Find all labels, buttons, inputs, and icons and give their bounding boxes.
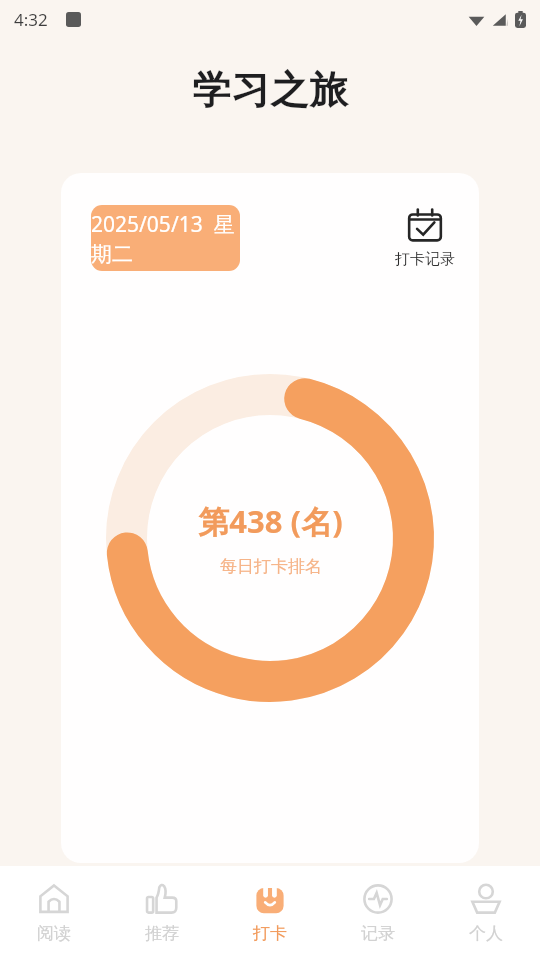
staticText: 阅读 [37, 923, 71, 944]
button[interactable]: 打卡记录 [389, 206, 461, 271]
staticText: 每日打卡排名 [220, 556, 322, 577]
staticText: 打卡记录 [395, 250, 455, 269]
button[interactable]: 2025/05/13 星期二 [91, 205, 240, 271]
staticText: 打卡 [253, 923, 287, 944]
staticText: 推荐 [145, 923, 179, 944]
button[interactable]: 推荐 [108, 866, 216, 960]
staticText: 第438 (名) [198, 500, 343, 542]
staticText: 记录 [361, 923, 395, 944]
staticText: 4:32 [14, 8, 48, 31]
button[interactable]: 个人 [432, 866, 540, 960]
button[interactable]: 打卡 [216, 866, 324, 960]
button[interactable]: 阅读 [0, 866, 108, 960]
button[interactable]: 记录 [324, 866, 432, 960]
staticText: 学习之旅 [192, 66, 348, 114]
staticText: 2025/05/13 星期二 [91, 210, 240, 267]
staticText: 个人 [469, 923, 503, 944]
